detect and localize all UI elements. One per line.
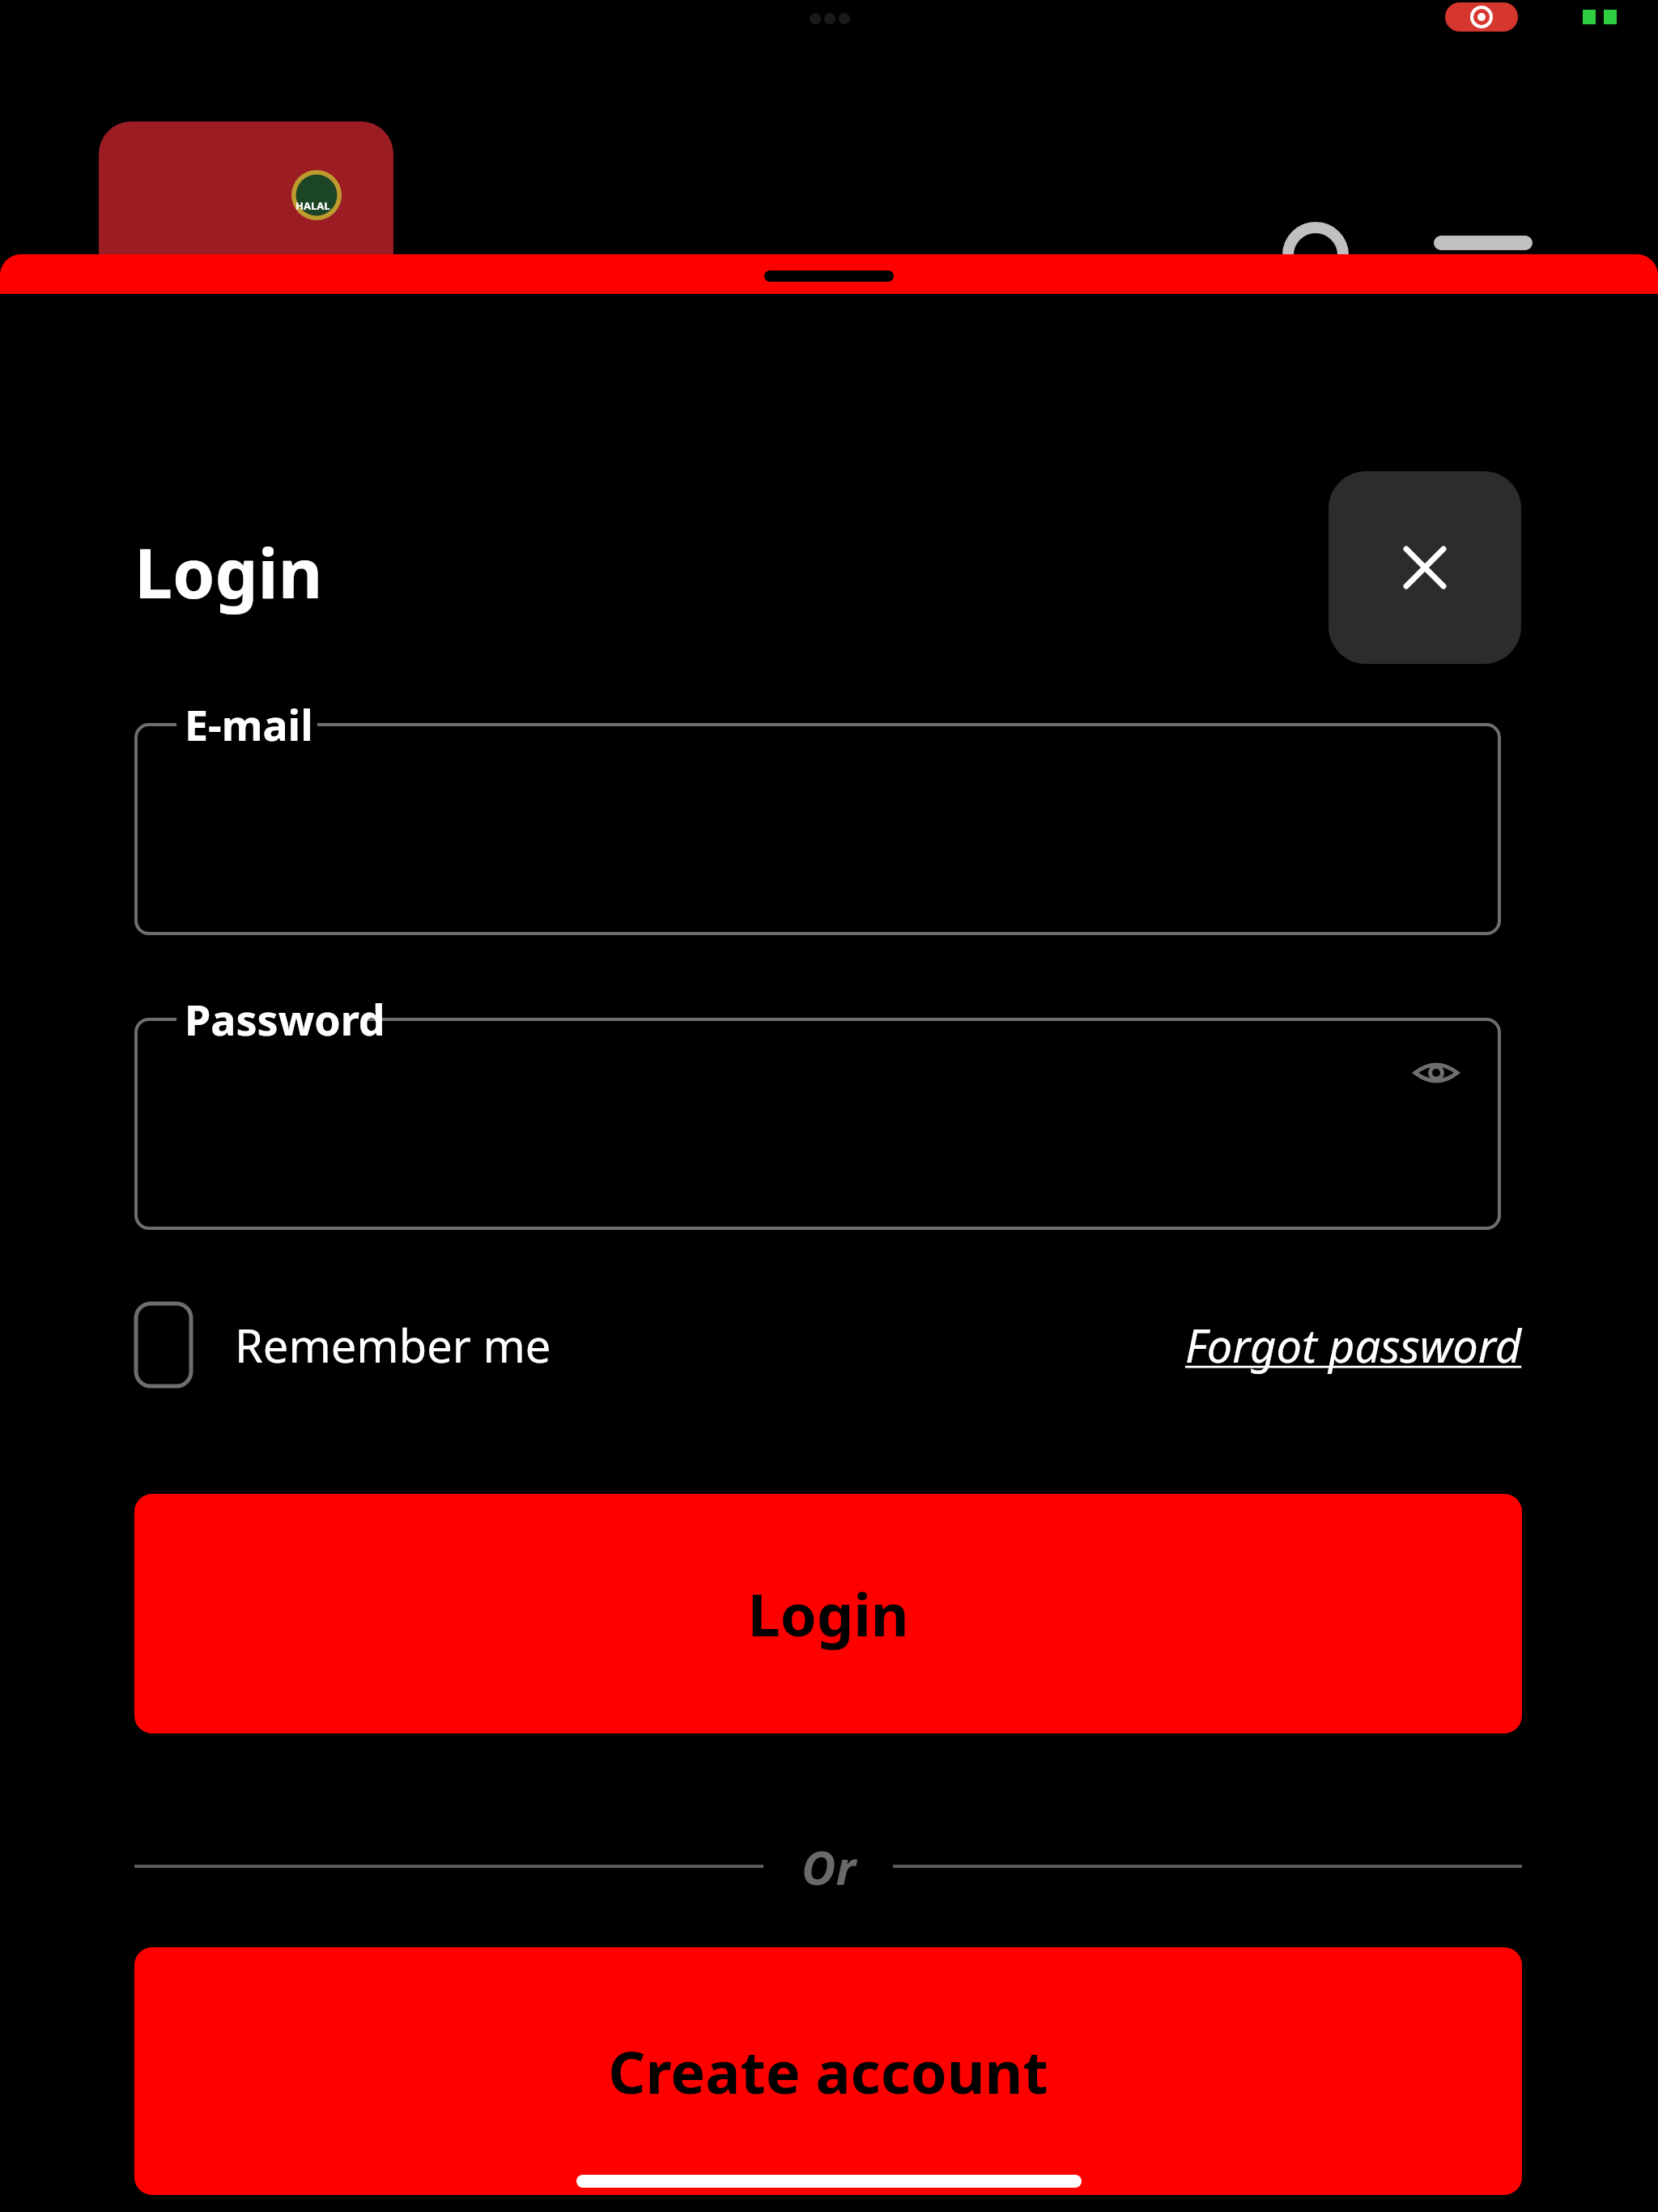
button[interactable]: Remember me: [134, 1296, 733, 1393]
button[interactable]: Forgot password: [1117, 1304, 1522, 1385]
staticText: Or: [801, 1835, 856, 1899]
button[interactable]: Close: [1329, 471, 1521, 664]
staticText: Remember me: [235, 1314, 551, 1376]
staticText: HALAL: [295, 198, 330, 213]
button[interactable]: Login: [134, 1494, 1522, 1733]
staticText: E-mail: [185, 696, 313, 753]
staticText: Login: [747, 1574, 909, 1653]
button[interactable]: Password: [134, 1018, 1501, 1230]
button[interactable]: E-mail: [134, 723, 1501, 935]
other: Search: [1279, 219, 1352, 291]
staticText: Foodie's: [107, 247, 393, 332]
staticText: Forgot password: [1185, 1314, 1522, 1376]
other: Menu: [1441, 233, 1525, 290]
staticText: Create account: [608, 2031, 1048, 2111]
button[interactable]: Create account: [134, 1947, 1522, 2195]
staticText: Login: [134, 525, 323, 618]
button[interactable]: Show password: [1404, 1040, 1469, 1105]
staticText: Password: [185, 990, 385, 1048]
